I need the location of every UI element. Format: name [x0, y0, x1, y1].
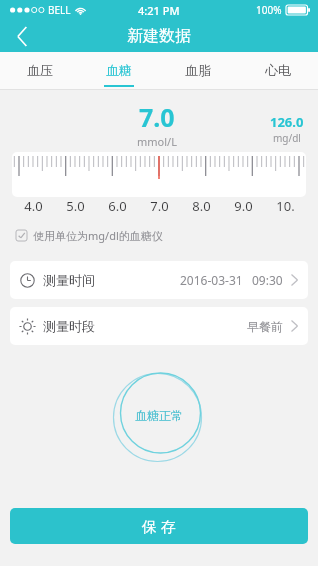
staticText: 血糖正常 [135, 408, 183, 423]
staticText: BELL [48, 3, 71, 17]
button[interactable]: 血糖 [79, 52, 158, 90]
button[interactable]: 保 存 [10, 508, 308, 544]
staticText: 10. [276, 197, 295, 215]
staticText: 4:21 PM [138, 3, 180, 18]
staticText: mg/dl [273, 131, 301, 145]
button[interactable]: 心电 [238, 52, 318, 90]
staticText: 7.0 [150, 197, 169, 215]
staticText: 测量时段 [43, 318, 95, 334]
staticText: 心电 [265, 62, 291, 78]
staticText: 血糖 [106, 62, 132, 78]
button[interactable]: 血压 [0, 52, 79, 90]
staticText: mmol/L [137, 134, 177, 146]
staticText: 9.0 [234, 197, 253, 215]
staticText: 血压 [27, 62, 53, 78]
staticText: 血脂 [185, 62, 211, 78]
staticText: 6.0 [108, 197, 127, 215]
button[interactable]: 血脂 [158, 52, 238, 90]
staticText: 4.0 [24, 197, 43, 215]
staticText: 126.0 [270, 113, 304, 131]
staticText: 早餐前 [247, 319, 283, 334]
button[interactable]: 血糖正常 [113, 369, 205, 461]
staticText: 新建数据 [127, 26, 191, 46]
staticText: 2016-03-31 09:30 [180, 272, 283, 288]
staticText: 保 存 [142, 516, 176, 536]
staticText: 5.0 [66, 197, 85, 215]
staticText: 使用单位为mg/dl的血糖仪 [33, 228, 163, 243]
staticText: 100% [256, 3, 282, 17]
button[interactable]: Back [0, 20, 44, 52]
button[interactable]: 测量时间 [10, 261, 308, 299]
staticText: 测量时间 [43, 272, 95, 288]
staticText: 8.0 [192, 197, 211, 215]
staticText: 7.0 [139, 100, 175, 134]
button[interactable]: 测量时段 [10, 307, 308, 345]
button[interactable]: 使用单位为mg/dl的血糖仪 [16, 225, 302, 245]
